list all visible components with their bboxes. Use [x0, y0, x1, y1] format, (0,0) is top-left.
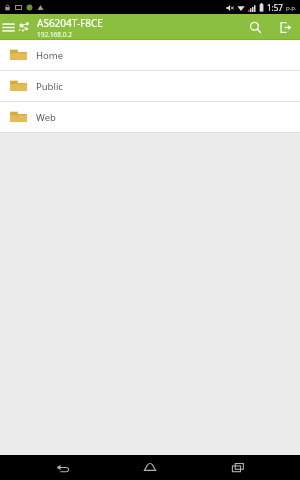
staticText: Home	[36, 49, 64, 62]
staticText: p.p.	[286, 4, 297, 12]
button[interactable]: Web	[0, 102, 300, 132]
button[interactable]: Open navigation menu	[0, 14, 16, 40]
button[interactable]: Recent apps	[213, 455, 263, 480]
button[interactable]: Log out	[270, 14, 300, 40]
staticText: 192.168.0.2	[37, 30, 72, 39]
staticText: AS6204T-F8CE	[37, 16, 103, 30]
button[interactable]: Home	[125, 455, 175, 480]
staticText: Public	[36, 80, 63, 93]
button[interactable]: Home	[0, 40, 300, 70]
button[interactable]: Search	[240, 14, 270, 40]
staticText: 1:57	[267, 2, 283, 13]
button[interactable]: Back	[38, 455, 88, 480]
button[interactable]: Public	[0, 71, 300, 101]
staticText: Web	[36, 111, 56, 124]
